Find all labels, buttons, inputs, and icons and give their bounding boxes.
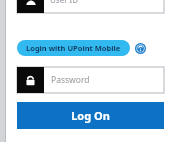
button[interactable]: Log On — [17, 102, 164, 129]
staticText: Login with UPoint Mobile — [26, 43, 121, 53]
button[interactable]: Help — [135, 43, 146, 54]
staticText: User ID — [50, 0, 79, 5]
button[interactable]: Login with UPoint Mobile — [17, 40, 130, 56]
staticText: Password — [51, 74, 90, 86]
staticText: Log On — [71, 108, 110, 123]
button[interactable]: Password — [17, 67, 164, 93]
button[interactable]: User ID — [17, 0, 164, 13]
